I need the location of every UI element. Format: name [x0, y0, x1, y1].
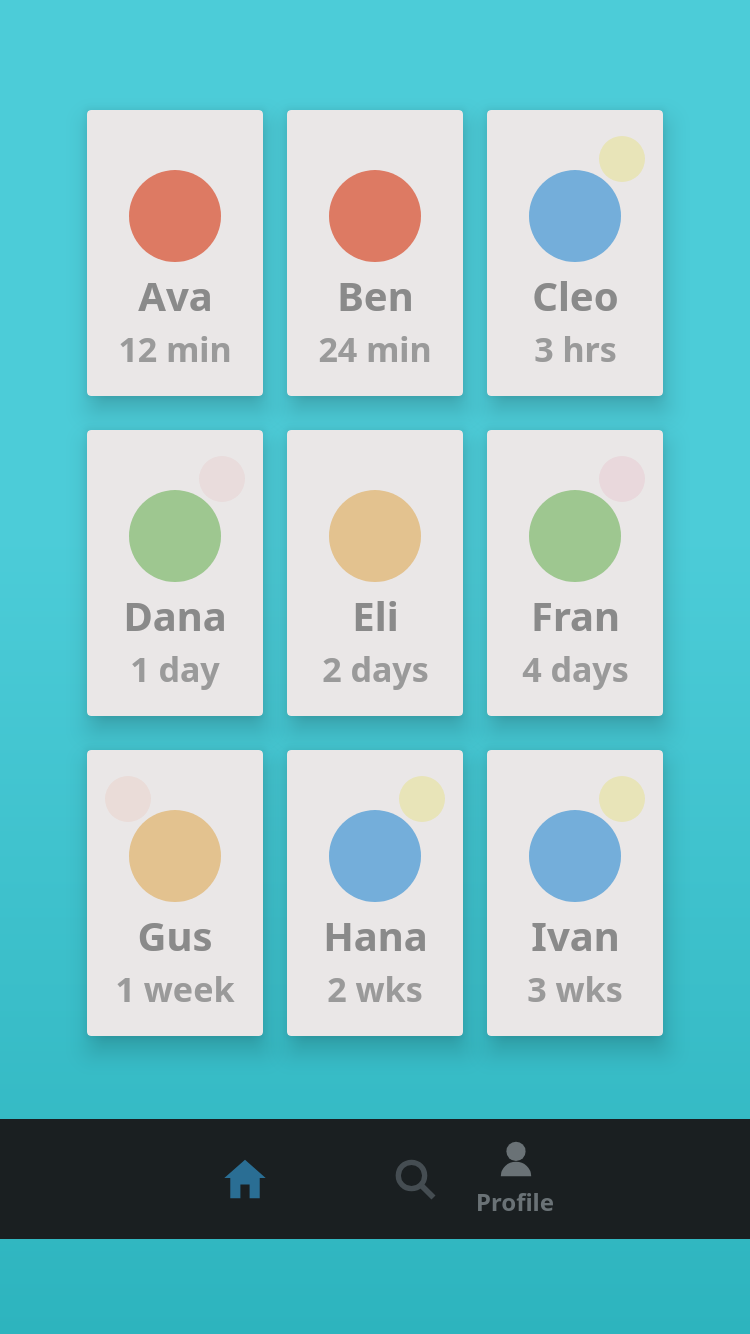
staticText: Cleo	[532, 268, 619, 322]
button[interactable]: Search	[375, 1139, 455, 1219]
staticText: 4 days	[522, 646, 629, 692]
button[interactable]: Profile	[455, 1139, 575, 1219]
button[interactable]: Ivan	[487, 750, 663, 1036]
button[interactable]: Hana	[287, 750, 463, 1036]
staticText: 24 min	[318, 326, 432, 372]
staticText: Ava	[138, 268, 213, 322]
button[interactable]: Dana	[87, 430, 263, 716]
staticText: 1 day	[130, 646, 220, 692]
button[interactable]: Cleo	[487, 110, 663, 396]
button[interactable]: Home	[205, 1139, 285, 1219]
staticText: Hana	[323, 908, 428, 962]
staticText: 3 wks	[527, 966, 623, 1012]
staticText: Ben	[337, 268, 414, 322]
staticText: 3 hrs	[534, 326, 617, 372]
button[interactable]: Fran	[487, 430, 663, 716]
staticText: 1 week	[115, 966, 235, 1012]
staticText: 12 min	[118, 326, 232, 372]
staticText: Ivan	[531, 908, 620, 962]
staticText: Eli	[352, 588, 399, 642]
staticText: Dana	[123, 588, 227, 642]
staticText: Fran	[531, 588, 620, 642]
button[interactable]: Ben	[287, 110, 463, 396]
staticText: Profile	[476, 1185, 555, 1218]
staticText: Gus	[137, 908, 213, 962]
button[interactable]: Gus	[87, 750, 263, 1036]
button[interactable]: Ava	[87, 110, 263, 396]
staticText: 2 wks	[327, 966, 423, 1012]
staticText: 2 days	[322, 646, 429, 692]
button[interactable]: Eli	[287, 430, 463, 716]
